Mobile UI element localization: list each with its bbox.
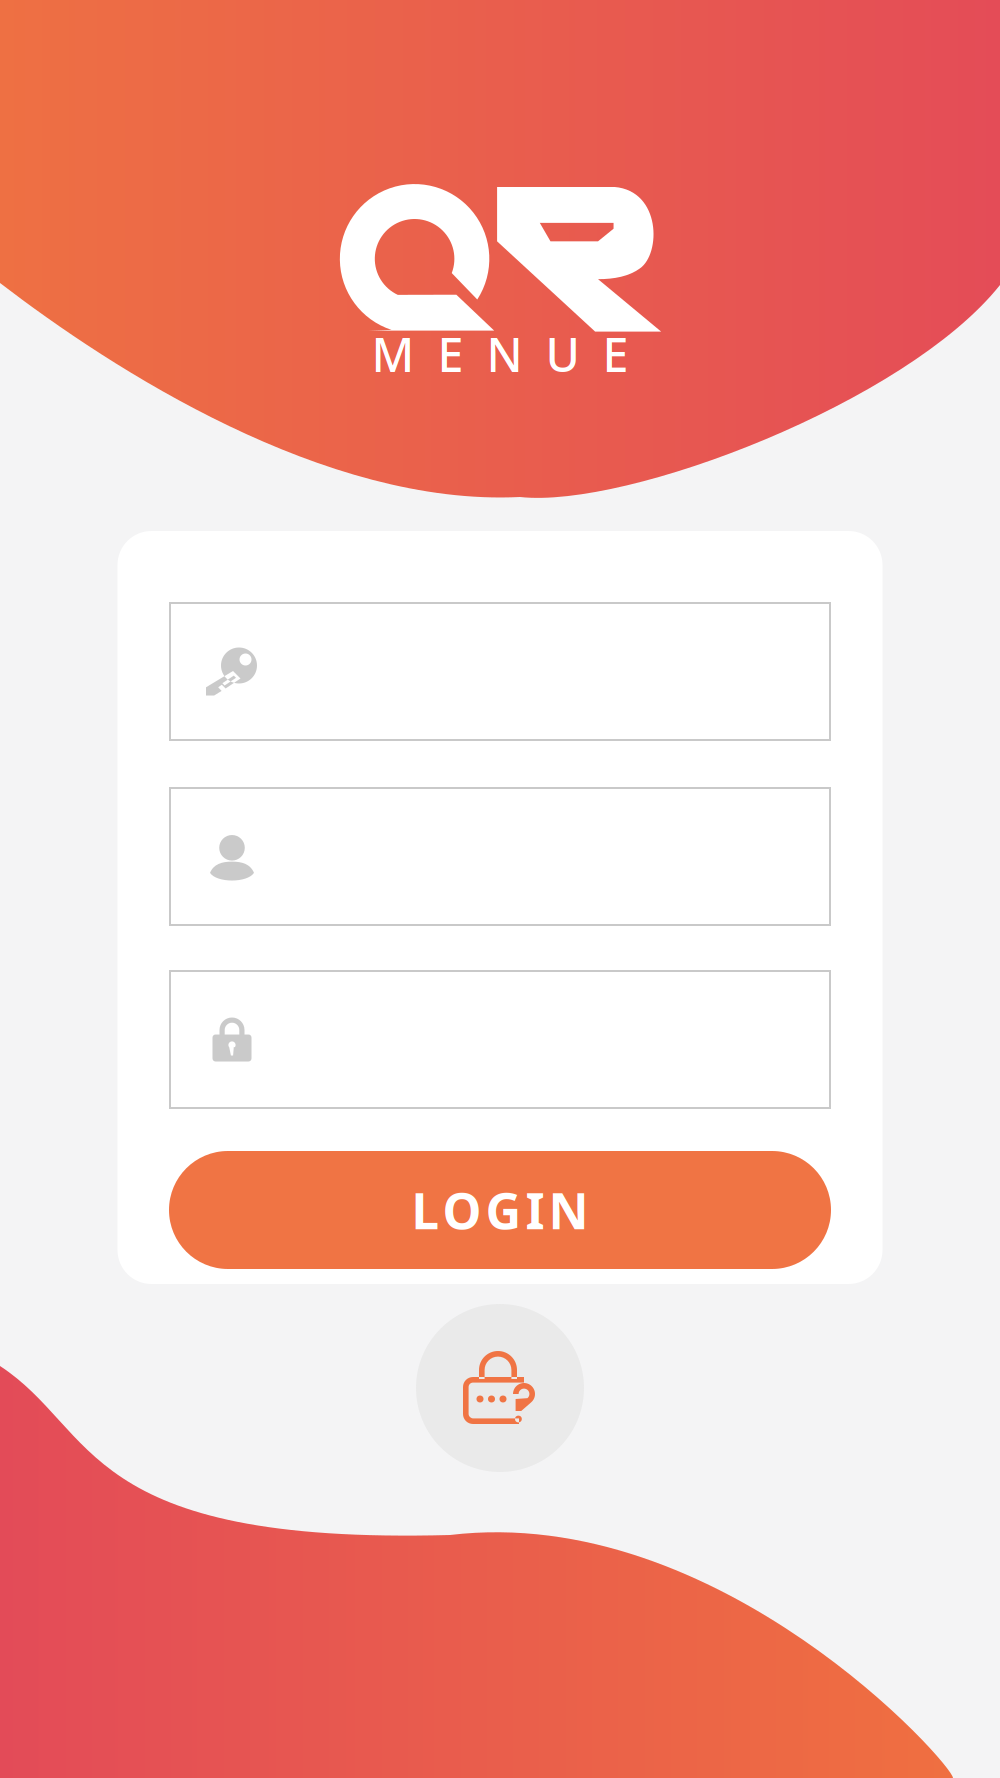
staticText: MENUE: [371, 323, 628, 385]
button[interactable]: LOGIN: [169, 1151, 831, 1269]
button[interactable]: Forgot password: [416, 1304, 584, 1472]
staticText: LOGIN: [411, 1177, 588, 1243]
